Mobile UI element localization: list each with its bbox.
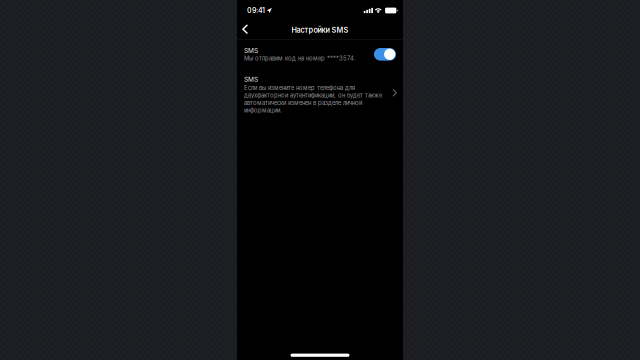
button[interactable]: SMS	[237, 41, 403, 68]
staticText: SMS	[244, 47, 258, 54]
staticText: Мы отправим код на номер ****3574.	[244, 55, 356, 62]
staticText: Если вы измените номер телефона для двух…	[244, 84, 382, 114]
button[interactable]: Back	[237, 21, 257, 39]
staticText: Настройки SMS	[291, 26, 348, 34]
button[interactable]: SMS	[237, 70, 403, 120]
staticText: 09:41	[247, 6, 265, 15]
staticText: SMS	[244, 75, 258, 83]
